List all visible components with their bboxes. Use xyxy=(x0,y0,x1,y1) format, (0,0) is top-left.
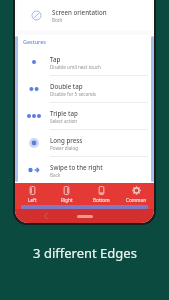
staticText: Gestures xyxy=(23,38,46,45)
button[interactable]: Tap xyxy=(15,49,154,75)
staticText: 3 different Edges xyxy=(33,244,137,262)
button[interactable]: Swipe to the right xyxy=(15,157,154,183)
staticText: Power dialog xyxy=(50,145,79,151)
staticText: Disable for 5 seconds xyxy=(50,91,97,97)
staticText: Swipe to the right xyxy=(50,163,103,171)
staticText: Both xyxy=(52,17,63,23)
staticText: Common xyxy=(126,197,147,203)
staticText: Long press xyxy=(50,136,83,144)
button[interactable]: Triple tap xyxy=(15,103,154,129)
button[interactable]: Left xyxy=(15,183,49,205)
staticText: Back xyxy=(50,172,61,178)
staticText: Triple tap xyxy=(50,109,78,117)
button[interactable]: Screen orientation xyxy=(17,0,152,30)
staticText: Left xyxy=(28,197,37,203)
button[interactable]: Right xyxy=(49,183,84,205)
button[interactable]: Common xyxy=(119,183,154,205)
staticText: Screen orientation xyxy=(52,8,107,16)
button[interactable]: Bottom xyxy=(84,183,119,205)
button[interactable]: Long press xyxy=(15,130,154,156)
staticText: Tap xyxy=(50,55,61,63)
staticText: Select action xyxy=(50,118,78,124)
staticText: Bottom xyxy=(93,197,110,203)
staticText: Double tap xyxy=(50,82,83,90)
staticText: Disable until next touch xyxy=(50,64,101,70)
button[interactable]: Double tap xyxy=(15,76,154,102)
staticText: Right xyxy=(61,197,73,203)
